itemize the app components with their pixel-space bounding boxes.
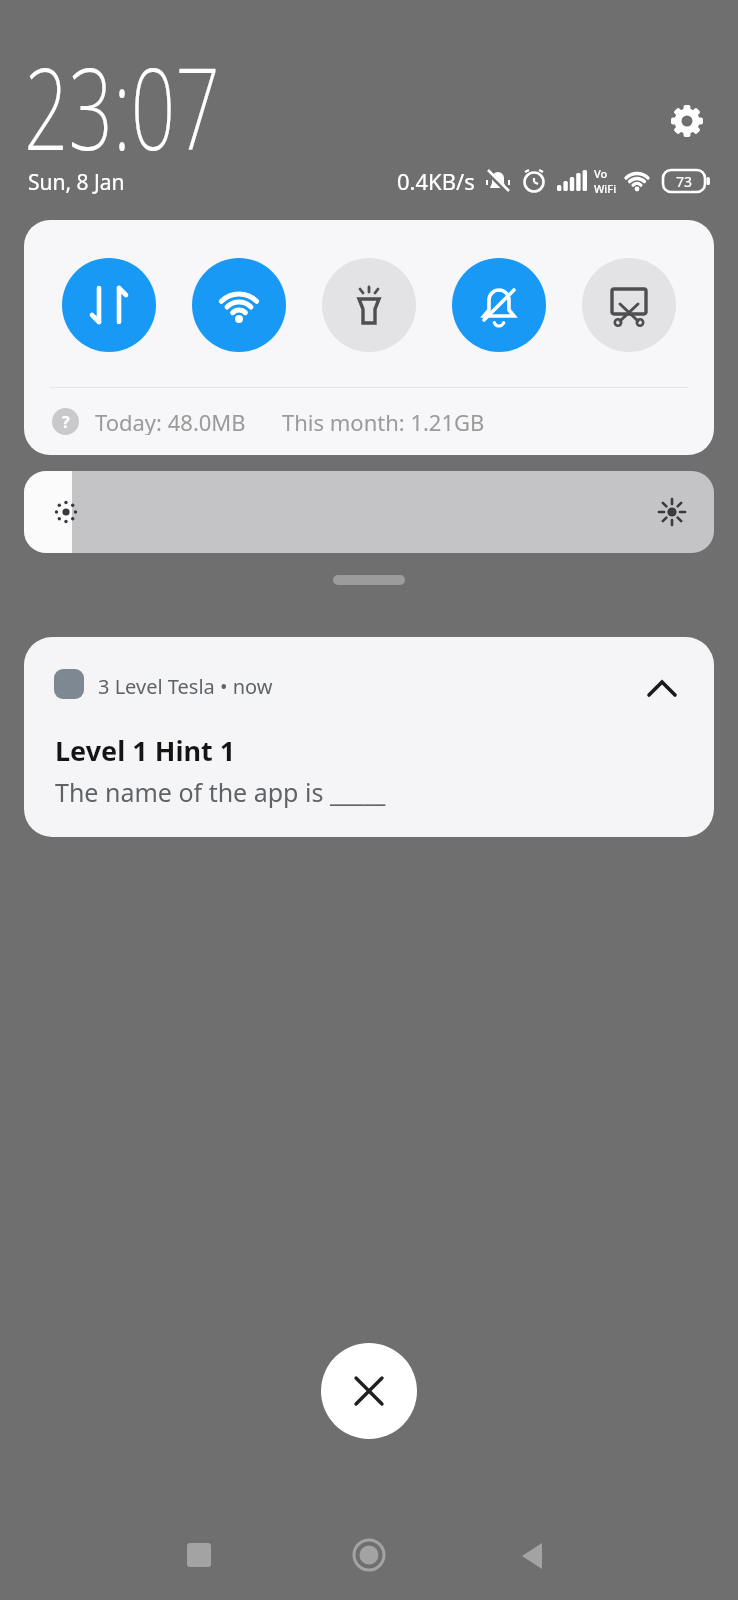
staticText: Vo WiFi (594, 166, 617, 196)
button[interactable] (192, 258, 286, 352)
staticText: This month: 1.21GB (282, 407, 485, 435)
staticText: 0.4KB/s (397, 166, 475, 196)
button[interactable] (520, 1543, 546, 1569)
staticText: Sun, 8 Jan (28, 168, 125, 197)
button[interactable] (646, 673, 678, 705)
button[interactable] (322, 258, 416, 352)
staticText: ? (62, 411, 70, 433)
staticText: 23:07 (24, 29, 220, 183)
staticText: Level 1 Hint 1 (55, 732, 236, 769)
button[interactable] (187, 1543, 211, 1567)
button[interactable] (321, 1343, 417, 1439)
button[interactable] (62, 258, 156, 352)
staticText: 73 (676, 172, 693, 191)
staticText: The name of the app is _____ (55, 775, 386, 809)
button[interactable]: 3 Level Tesla • now (24, 637, 714, 837)
staticText: 3 Level Tesla • now (98, 673, 273, 700)
button[interactable] (24, 471, 714, 553)
staticText: Today: 48.0MB (95, 407, 246, 435)
button[interactable] (351, 1537, 387, 1573)
button[interactable] (582, 258, 676, 352)
button[interactable] (452, 258, 546, 352)
button[interactable] (668, 102, 706, 140)
